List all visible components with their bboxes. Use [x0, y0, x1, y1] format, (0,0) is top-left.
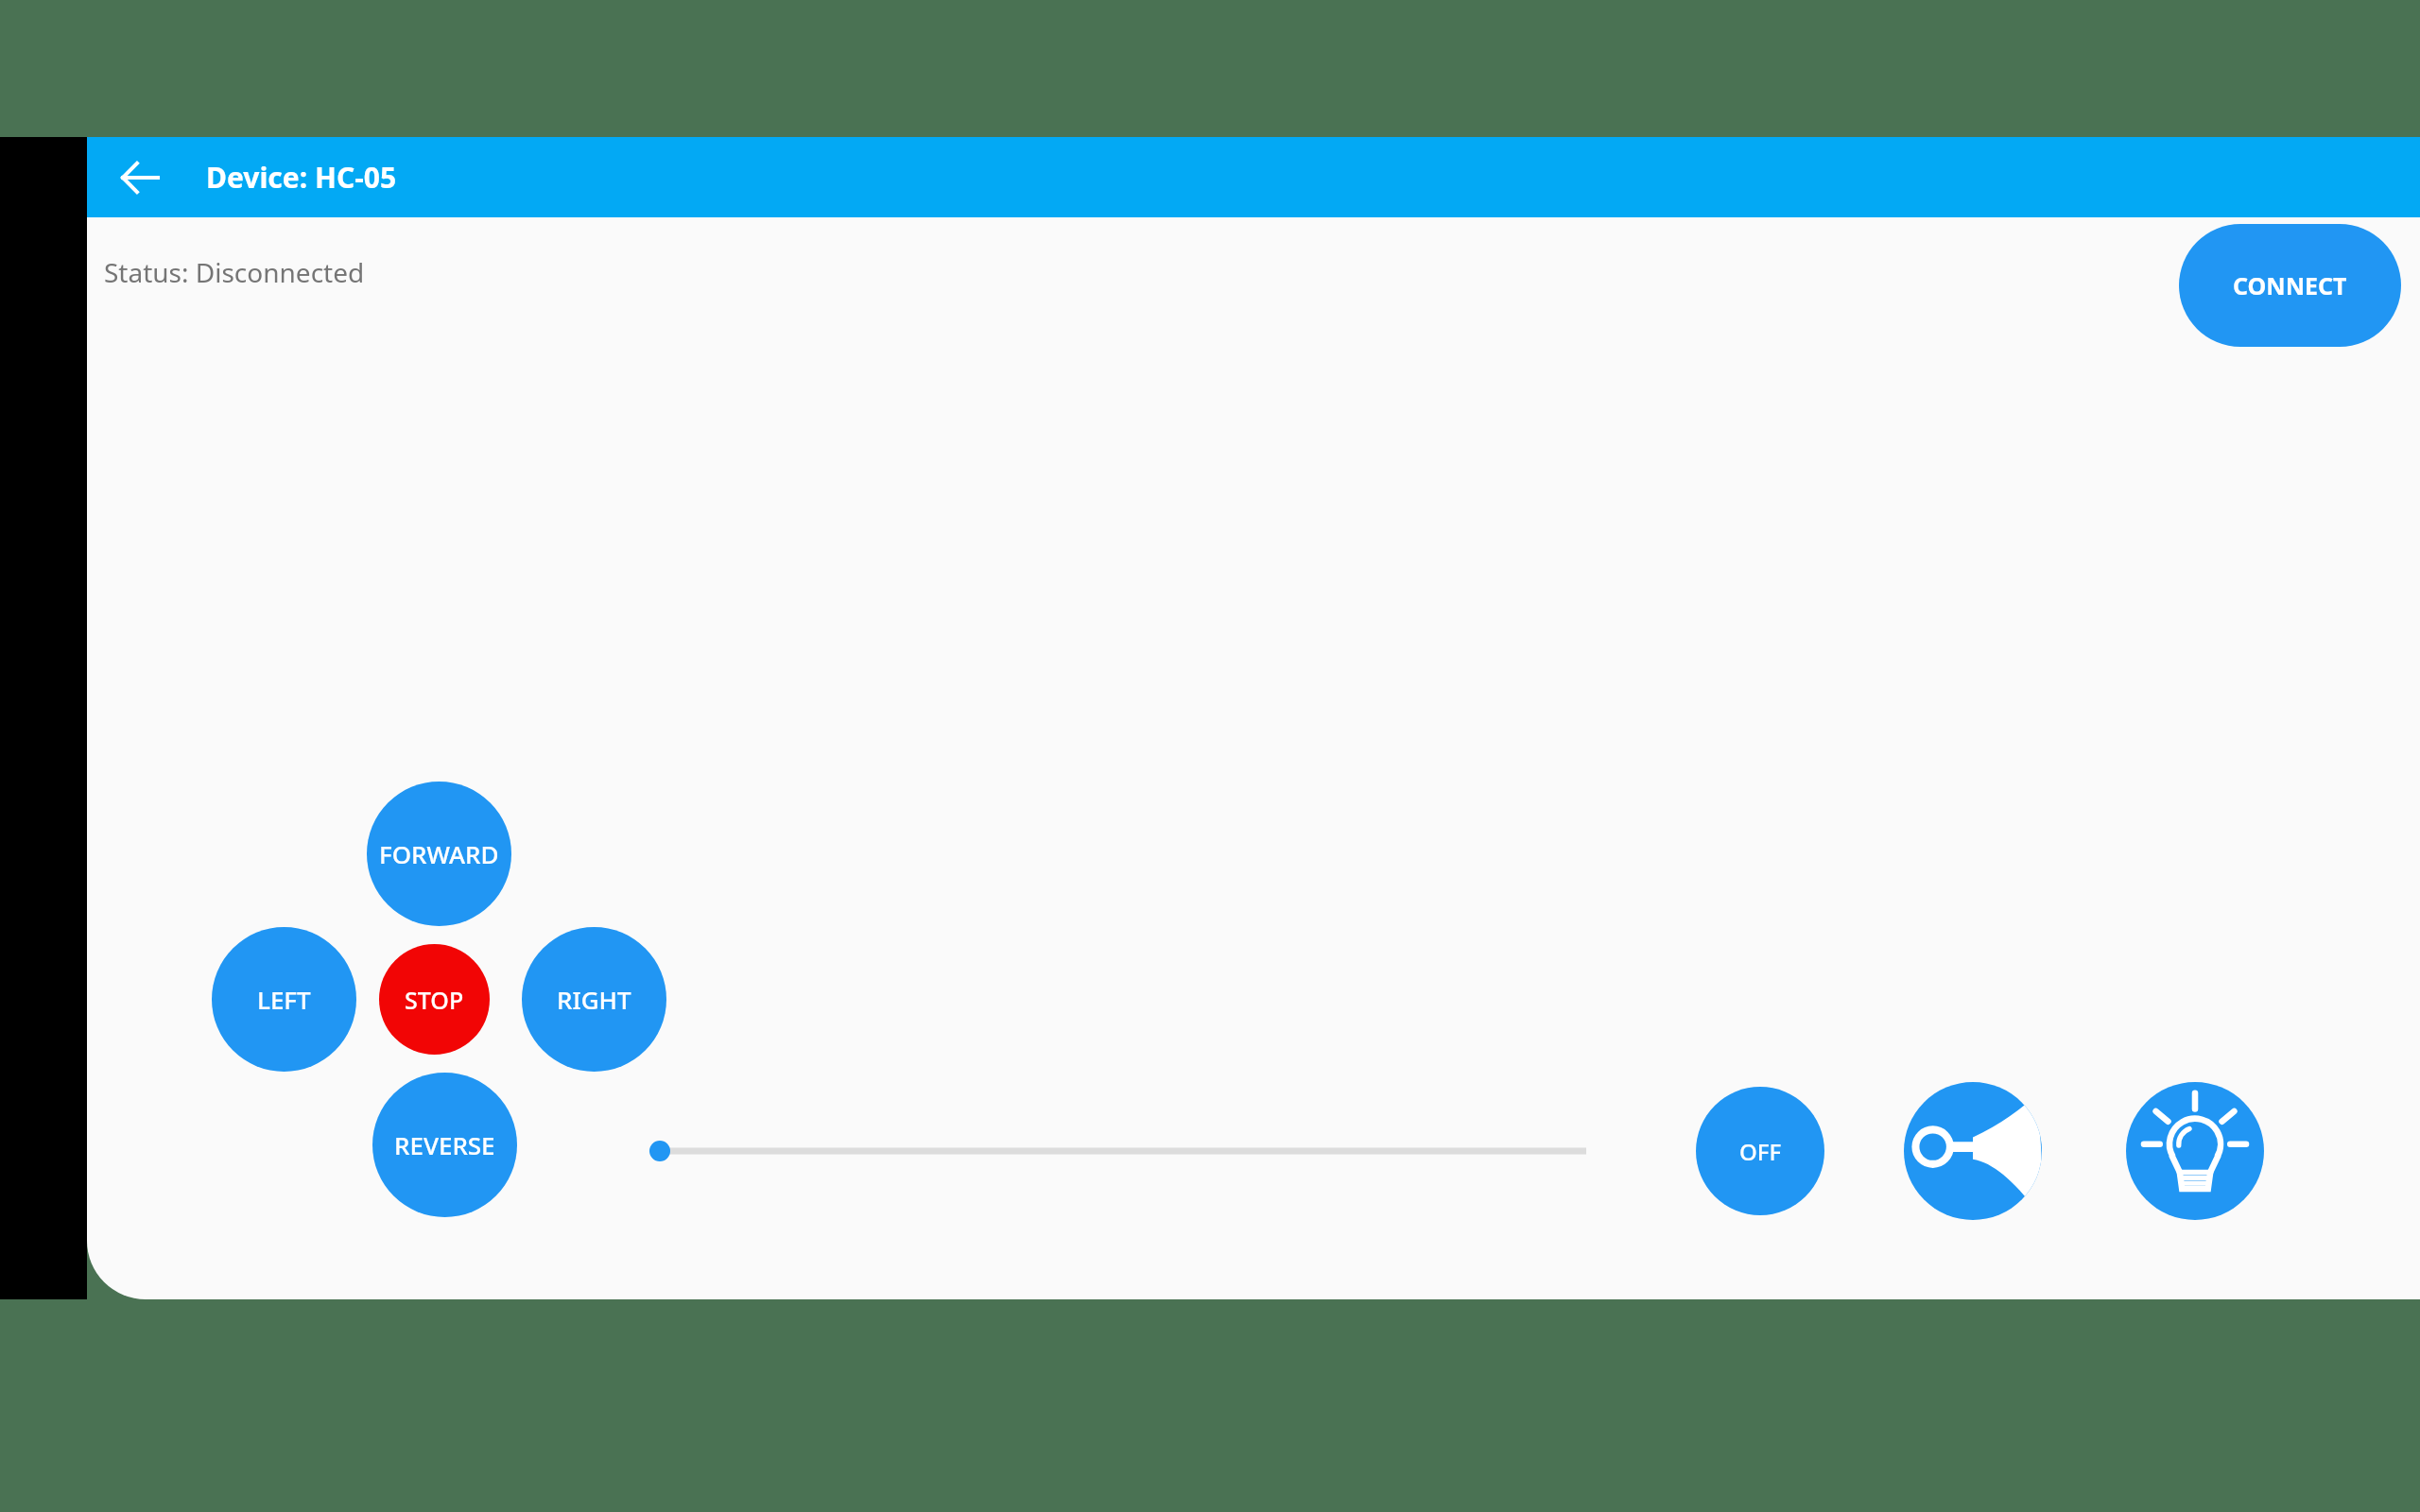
button[interactable]: Light: [2126, 1082, 2264, 1220]
staticText: STOP: [405, 984, 464, 1016]
button[interactable]: LEFT: [212, 927, 356, 1072]
staticText: OFF: [1739, 1136, 1782, 1167]
button[interactable]: REVERSE: [372, 1073, 517, 1217]
staticText: RIGHT: [557, 983, 631, 1016]
button[interactable]: RIGHT: [522, 927, 666, 1072]
staticText: FORWARD: [379, 837, 499, 870]
staticText: CONNECT: [2233, 269, 2347, 301]
button[interactable]: Back: [104, 142, 176, 214]
staticText: LEFT: [257, 983, 311, 1016]
button[interactable]: [650, 1123, 1586, 1179]
button[interactable]: FORWARD: [367, 782, 511, 926]
staticText: Device: HC-05: [206, 158, 397, 197]
button[interactable]: OFF: [1696, 1087, 1824, 1215]
staticText: REVERSE: [394, 1128, 495, 1161]
button[interactable]: Horn: [1904, 1082, 2042, 1220]
staticText: Status: Disconnected: [104, 254, 365, 290]
button[interactable]: CONNECT: [2179, 224, 2401, 347]
button[interactable]: STOP: [379, 944, 490, 1055]
